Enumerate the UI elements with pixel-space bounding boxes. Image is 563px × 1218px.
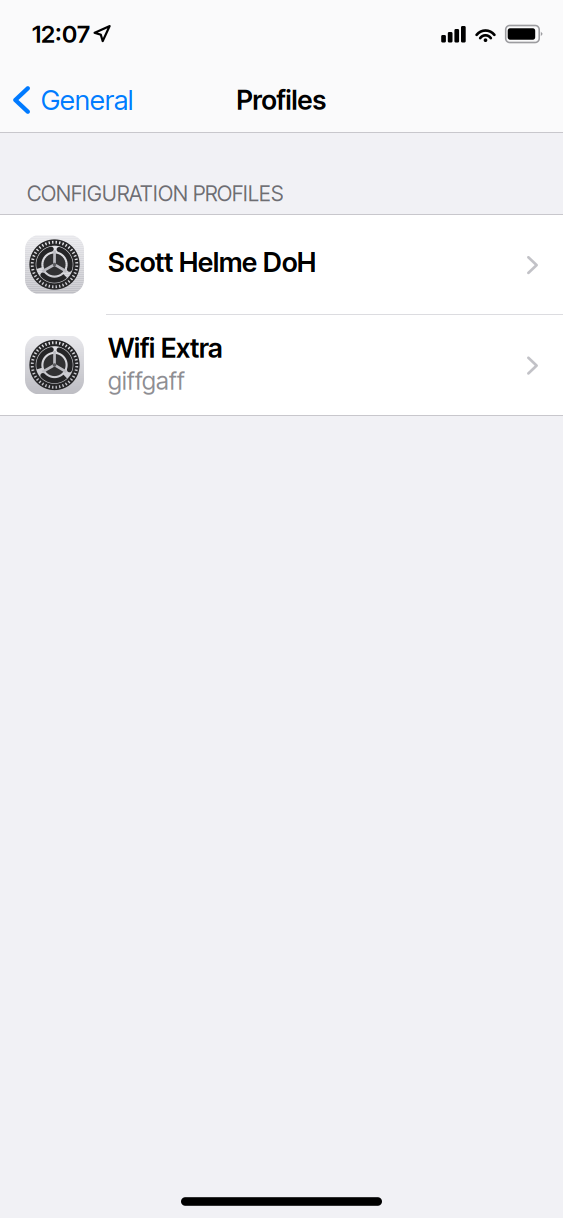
button[interactable]: Scott Helme DoH [0, 215, 563, 314]
staticText: Profiles [236, 84, 326, 116]
staticText: Scott Helme DoH [108, 246, 316, 278]
staticText: CONFIGURATION PROFILES [27, 181, 283, 206]
staticText: 12:07 [32, 19, 90, 48]
button[interactable]: Back to General [0, 71, 147, 129]
button[interactable]: Wifi Extra [0, 315, 563, 415]
staticText: General [41, 83, 133, 117]
staticText: Wifi Extra [108, 331, 223, 364]
staticText: giffgaff [108, 366, 185, 396]
